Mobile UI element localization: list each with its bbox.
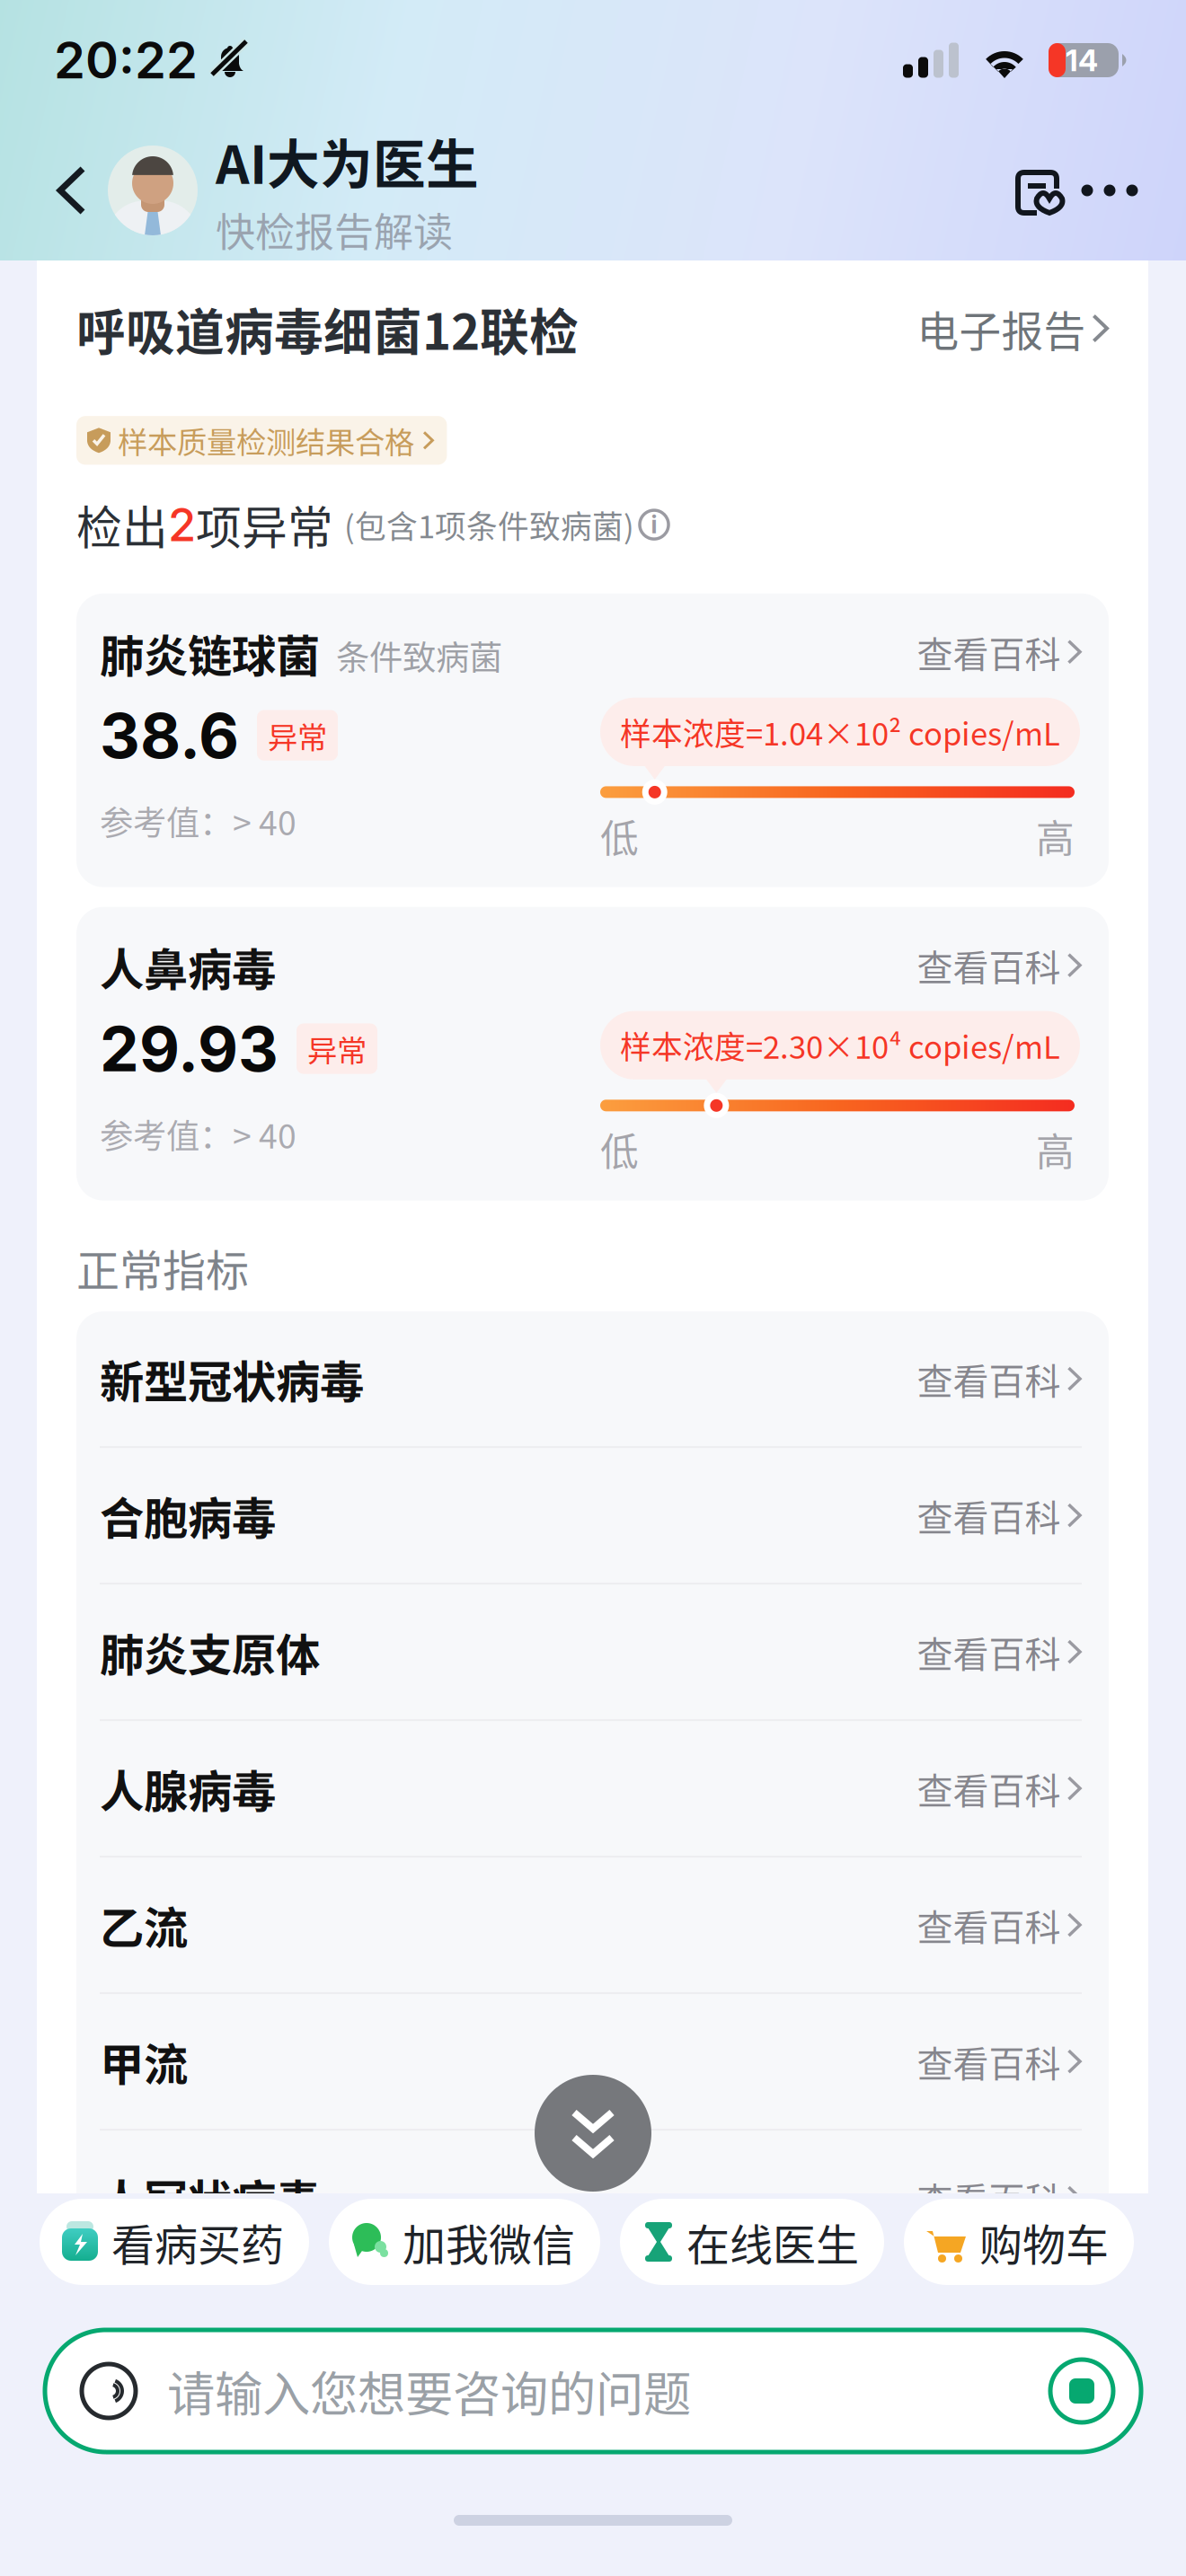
staticText: 20:22 <box>54 30 198 91</box>
button[interactable]: 查看百科 <box>917 619 1082 685</box>
staticText: 在线医生 <box>686 2211 859 2273</box>
button[interactable]: 新型冠状病毒 <box>76 1311 1109 1446</box>
staticText: 检出 <box>76 492 168 558</box>
staticText: 2 <box>168 497 196 552</box>
button[interactable]: 样本质量检测结果合格 <box>76 416 447 465</box>
staticText: 查看百科 <box>917 1762 1061 1814</box>
staticText: 样本浓度=2.30×10⁴ copies/mL <box>620 1023 1060 1068</box>
staticText: 样本浓度=1.04×10² copies/mL <box>620 709 1060 754</box>
button[interactable]: 说明 <box>634 505 674 544</box>
button[interactable]: 购物车 <box>904 2199 1134 2285</box>
staticText: 电子报告 <box>917 298 1086 359</box>
button[interactable]: 向下滚动 <box>535 2075 651 2192</box>
button[interactable]: 在线医生 <box>620 2199 884 2285</box>
staticText: 购物车 <box>979 2211 1109 2273</box>
staticText: 样本质量检测结果合格 <box>118 419 414 462</box>
staticText: 参考值：> 40 <box>100 796 296 845</box>
staticText: 查看百科 <box>917 1353 1061 1405</box>
staticText: 低 <box>600 1122 639 1177</box>
staticText: (包含1项条件致病菌) <box>344 502 634 547</box>
button[interactable]: 电子报告 <box>917 298 1109 359</box>
staticText: 新型冠状病毒 <box>100 1347 364 1411</box>
staticText: 异常 <box>268 714 327 757</box>
button[interactable]: 查看百科 <box>917 932 1082 998</box>
staticText: 人冠状病毒 <box>100 2166 320 2230</box>
staticText: 看病买药 <box>111 2211 284 2273</box>
button[interactable]: 更多 <box>1069 159 1150 222</box>
button[interactable]: 返回 <box>40 150 104 231</box>
staticText: AI大为医生 <box>216 123 479 199</box>
staticText: 人腺病毒 <box>100 1756 276 1820</box>
staticText: i <box>651 510 657 539</box>
staticText: 查看百科 <box>917 939 1061 991</box>
staticText: 29.93 <box>100 1011 279 1086</box>
staticText: 正常指标 <box>76 1236 249 1299</box>
staticText: 肺炎支原体 <box>100 1620 320 1684</box>
staticText: 查看百科 <box>917 2172 1061 2224</box>
staticText: 查看百科 <box>917 1489 1061 1541</box>
staticText: 肺炎链球菌 <box>100 621 320 685</box>
staticText: 查看百科 <box>917 2035 1061 2087</box>
button[interactable]: 肺炎支原体 <box>76 1584 1109 1719</box>
button[interactable]: 乙流 <box>76 1858 1109 1992</box>
staticText: 条件致病菌 <box>336 631 502 680</box>
staticText: 高 <box>1036 808 1075 864</box>
staticText: 低 <box>600 808 639 864</box>
staticText: 甲流 <box>100 2029 188 2093</box>
staticText: 合胞病毒 <box>100 1483 276 1547</box>
staticText: 请输入您想要咨询的问题 <box>167 2356 691 2426</box>
staticText: 乙流 <box>100 1893 188 1957</box>
staticText: 项异常 <box>196 492 333 558</box>
staticText: 查看百科 <box>917 626 1061 678</box>
button[interactable]: 人冠状病毒 <box>76 2131 1109 2265</box>
staticText: 快检报告解读 <box>216 201 453 258</box>
staticText: 14 <box>1066 42 1098 78</box>
staticText: 查看百科 <box>917 1899 1061 1951</box>
staticText: 人鼻病毒 <box>100 934 276 998</box>
button[interactable]: 加我微信 <box>329 2199 600 2285</box>
staticText: 38.6 <box>100 698 239 773</box>
staticText: 高 <box>1036 1122 1075 1177</box>
button[interactable]: 甲流 <box>76 1994 1109 2129</box>
staticText: 查看百科 <box>917 1626 1061 1678</box>
staticText: 异常 <box>307 1027 367 1070</box>
button[interactable]: 看病买药 <box>40 2199 309 2285</box>
staticText: 参考值：> 40 <box>100 1110 296 1158</box>
button[interactable]: 人腺病毒 <box>76 1721 1109 1856</box>
button[interactable]: 合胞病毒 <box>76 1448 1109 1583</box>
staticText: 呼吸道病毒细菌12联检 <box>76 293 579 364</box>
button[interactable]: 报告收藏 <box>1006 159 1069 222</box>
staticText: 加我微信 <box>403 2211 575 2273</box>
